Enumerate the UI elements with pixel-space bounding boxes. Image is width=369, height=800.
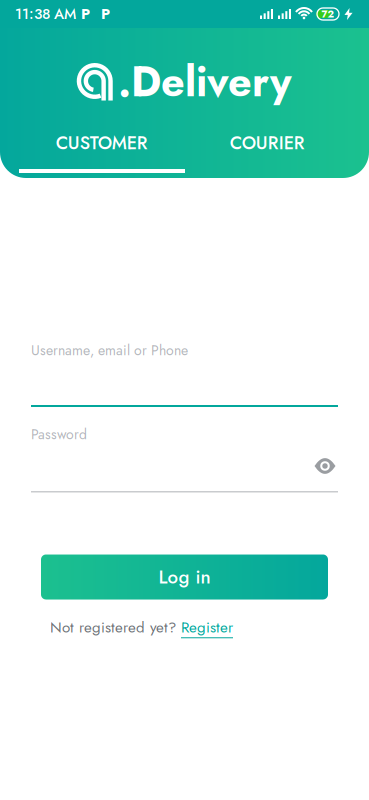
staticText: 72 <box>321 7 334 21</box>
staticText: .Delivery <box>118 52 292 112</box>
staticText: COURIER <box>230 130 305 156</box>
button[interactable]: Show password <box>312 456 338 476</box>
button[interactable]: COURIER <box>184 131 350 155</box>
button[interactable]: CUSTOMER <box>19 131 184 155</box>
button[interactable]: Username, email or Phone <box>31 341 338 407</box>
staticText: P <box>101 3 110 25</box>
staticText: CUSTOMER <box>56 130 148 156</box>
staticText: 11:38 AM <box>15 3 76 25</box>
staticText: P <box>81 3 90 25</box>
staticText: Register <box>181 616 233 638</box>
button[interactable]: Log in <box>41 554 328 599</box>
staticText: Password <box>31 424 87 445</box>
staticText: Username, email or Phone <box>31 340 188 361</box>
button[interactable]: Password <box>31 425 338 492</box>
staticText: Log in <box>158 563 210 590</box>
button[interactable]: Register <box>181 616 233 638</box>
staticText: Not registered yet? <box>50 616 176 638</box>
